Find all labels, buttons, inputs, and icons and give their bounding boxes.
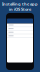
staticText: in iOS Store [9,6,31,12]
staticText: Installing the app [2,1,38,6]
